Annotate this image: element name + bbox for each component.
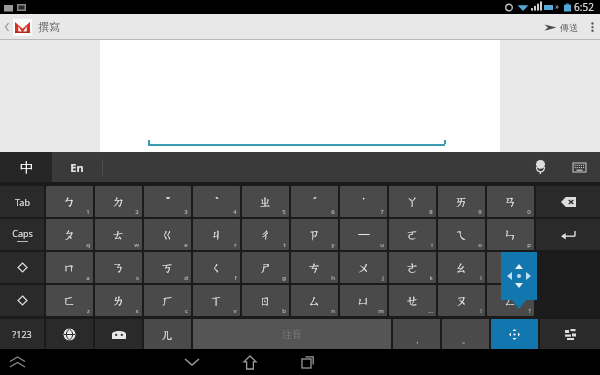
staticText: ㄩ: [357, 293, 370, 308]
staticText: …: [428, 307, 433, 315]
button[interactable]: ㄥ: [487, 285, 534, 316]
staticText: 3: [184, 208, 188, 216]
staticText: ˇ: [165, 194, 171, 210]
button[interactable]: ㄊ: [95, 219, 142, 250]
button[interactable]: ㄣ: [487, 219, 534, 250]
button[interactable]: 一: [340, 219, 387, 250]
button[interactable]: ?123: [0, 319, 44, 349]
button[interactable]: ˇ: [144, 186, 191, 217]
button[interactable]: ㄔ: [242, 219, 289, 250]
staticText: ㄨ: [357, 260, 370, 275]
button[interactable]: ㄝ: [389, 285, 436, 316]
button[interactable]: ㄦ: [144, 319, 191, 349]
staticText: 中: [20, 159, 33, 175]
button[interactable]: Shift: [0, 252, 44, 283]
button[interactable]: ㄚ: [389, 186, 436, 217]
staticText: ㄌ: [112, 293, 125, 308]
button[interactable]: ㄌ: [95, 285, 142, 316]
staticText: s: [136, 274, 139, 282]
staticText: 9: [478, 208, 482, 216]
button[interactable]: ㄡ: [438, 285, 485, 316]
button[interactable]: ㄐ: [193, 219, 240, 250]
button[interactable]: Recent apps: [291, 349, 325, 375]
button[interactable]: ㄕ: [242, 252, 289, 283]
button[interactable]: ㄞ: [438, 186, 485, 217]
button[interactable]: Arrow keys: [491, 319, 538, 349]
button[interactable]: ㄎ: [144, 252, 191, 283]
button[interactable]: App switcher: [6, 351, 28, 373]
button[interactable]: ㄉ: [95, 186, 142, 217]
staticText: ㄢ: [504, 194, 517, 209]
staticText: 8: [429, 208, 433, 216]
staticText: n: [331, 307, 335, 315]
button[interactable]: Gmail: [13, 19, 32, 36]
button[interactable]: More options: [584, 14, 600, 40]
staticText: ㄤ: [504, 260, 517, 275]
staticText: a: [86, 274, 90, 282]
button[interactable]: Hide keyboard: [175, 349, 209, 375]
button[interactable]: Emoji: [95, 319, 142, 349]
staticText: 0: [527, 208, 531, 216]
staticText: m: [378, 307, 384, 315]
staticText: ㄊ: [112, 227, 125, 242]
button[interactable]: ㄩ: [340, 285, 387, 316]
staticText: h: [331, 274, 335, 282]
button[interactable]: ㄨ: [340, 252, 387, 283]
button[interactable]: ㄢ: [487, 186, 534, 217]
staticText: g: [282, 274, 286, 282]
button[interactable]: ㄑ: [193, 252, 240, 283]
button[interactable]: ˋ: [193, 186, 240, 217]
button[interactable]: Arrow keys popup: [501, 252, 537, 300]
button[interactable]: ㄖ: [242, 285, 289, 316]
staticText: o: [478, 241, 482, 249]
button[interactable]: ㄈ: [46, 285, 93, 316]
staticText: b: [282, 307, 286, 315]
button[interactable]: ㄆ: [46, 219, 93, 250]
staticText: 4: [233, 208, 237, 216]
button[interactable]: 傳送: [538, 14, 584, 40]
staticText: ㄚ: [406, 194, 419, 209]
button[interactable]: Shift: [0, 285, 44, 316]
button[interactable]: ㄍ: [144, 219, 191, 250]
button[interactable]: Home: [233, 349, 267, 375]
button[interactable]: ㄇ: [46, 252, 93, 283]
button[interactable]: 中: [0, 152, 52, 182]
button[interactable]: Change language: [46, 319, 93, 349]
button[interactable]: ㄟ: [438, 219, 485, 250]
button[interactable]: Navigate up: [3, 14, 11, 40]
button[interactable]: Enter: [536, 219, 600, 250]
staticText: w: [134, 241, 139, 249]
button[interactable]: Caps: [0, 219, 44, 250]
button[interactable]: Change keyboard: [564, 152, 594, 182]
button[interactable]: Backspace: [536, 186, 600, 217]
button[interactable]: Settings: [540, 319, 600, 349]
staticText: !: [480, 307, 482, 315]
button[interactable]: ㄋ: [95, 252, 142, 283]
staticText: l: [480, 274, 482, 282]
staticText: Tab: [15, 196, 30, 208]
button[interactable]: ㄓ: [242, 186, 289, 217]
button[interactable]: ㄠ: [438, 252, 485, 283]
button[interactable]: ㄜ: [389, 252, 436, 283]
button[interactable]: En: [52, 152, 102, 182]
button[interactable]: ㄛ: [389, 219, 436, 250]
button[interactable]: ˙: [340, 186, 387, 217]
button[interactable]: Tab: [0, 186, 44, 217]
button[interactable]: ㄙ: [291, 285, 338, 316]
button[interactable]: ㄏ: [144, 285, 191, 316]
button[interactable]: ㄗ: [291, 219, 338, 250]
staticText: ㄝ: [406, 293, 419, 308]
button[interactable]: Voice input: [525, 152, 555, 182]
staticText: ㄥ: [504, 293, 517, 308]
button[interactable]: ㄤ: [487, 252, 534, 283]
button[interactable]: ㄘ: [291, 252, 338, 283]
staticText: q: [86, 241, 90, 249]
button[interactable]: ㄅ: [46, 186, 93, 217]
staticText: ˊ: [313, 194, 317, 210]
button[interactable]: ˊ: [291, 186, 338, 217]
button[interactable]: ㄒ: [193, 285, 240, 316]
staticText: ㄜ: [406, 260, 419, 275]
